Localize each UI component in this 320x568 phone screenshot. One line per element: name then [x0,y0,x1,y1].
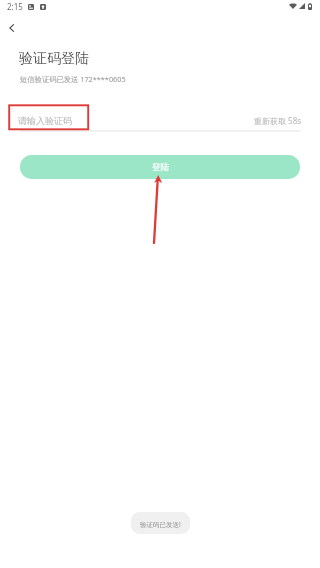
staticText: 验证码已发送! [140,520,181,529]
staticText: 登陆 [152,162,169,173]
staticText: 2:15 [7,1,23,12]
staticText: 重新获取 58s [254,115,302,126]
button[interactable]: 验证码已发送! [131,512,190,534]
button[interactable]: Back [1,18,21,38]
button[interactable]: 重新获取 58s [248,106,302,130]
staticText: 请输入验证码 [18,115,72,126]
button[interactable]: 请输入验证码 [18,106,198,130]
staticText: 短信验证码已发送 172****0605 [20,74,126,84]
button[interactable]: 登陆 [20,155,300,179]
staticText: 验证码登陆 [19,50,89,68]
